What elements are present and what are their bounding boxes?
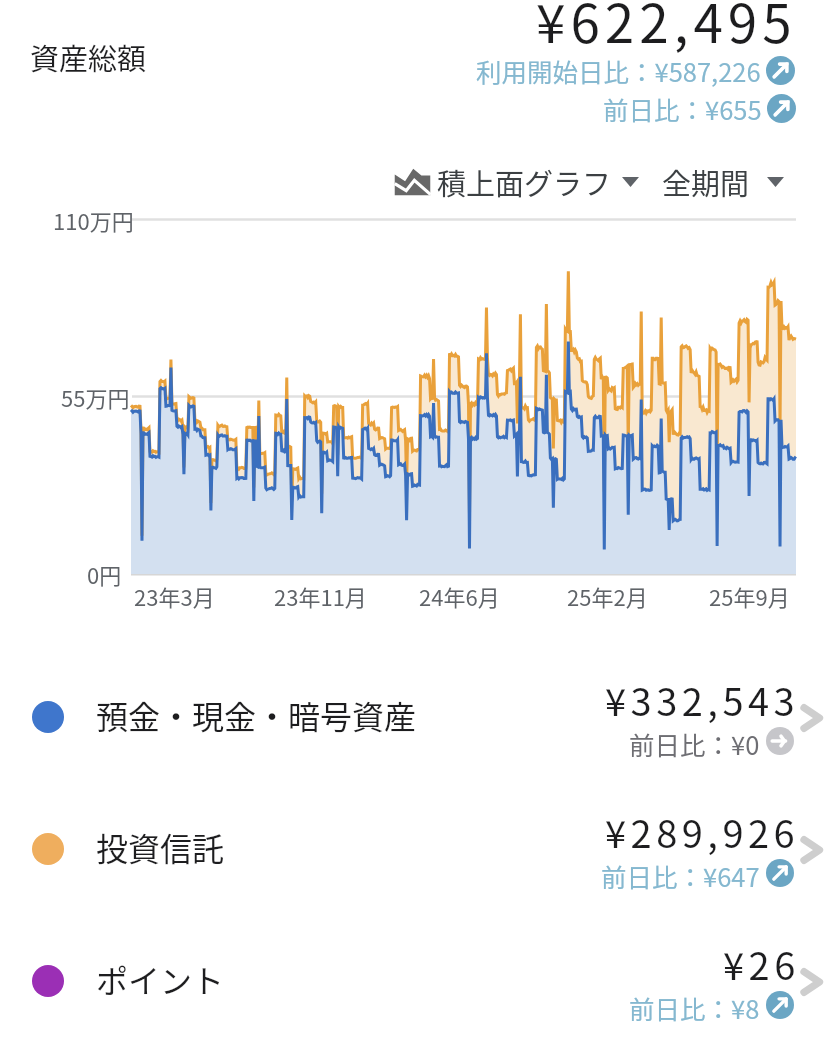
staticText: 55万円 xyxy=(61,381,130,413)
other: Open ポイント xyxy=(799,963,828,1001)
staticText: 預金・現金・暗号資産 xyxy=(96,692,417,738)
staticText: ポイント xyxy=(96,956,225,1002)
staticText: 前日比：¥0 xyxy=(629,725,760,762)
staticText: 23年3月 xyxy=(134,580,215,612)
button[interactable]: ポイント xyxy=(0,916,828,1038)
button[interactable]: 利用開始日比：¥587,226 xyxy=(462,49,809,92)
staticText: 23年11月 xyxy=(274,580,367,612)
staticText: 前日比：¥655 xyxy=(603,90,762,127)
staticText: 投資信託 xyxy=(96,824,225,870)
staticText: 積上面グラフ xyxy=(437,161,612,203)
staticText: 前日比：¥647 xyxy=(601,857,760,894)
button[interactable]: 預金・現金・暗号資産 xyxy=(0,652,828,782)
staticText: 25年9月 xyxy=(709,580,790,612)
staticText: 24年6月 xyxy=(419,580,500,612)
other: Open 投資信託 xyxy=(799,831,828,869)
button[interactable]: 全期間 xyxy=(662,161,784,203)
staticText: 全期間 xyxy=(662,161,750,203)
other: Open 預金・現金・暗号資産 xyxy=(799,699,828,737)
staticText: ¥289,926 xyxy=(605,804,800,859)
staticText: 資産総額 xyxy=(30,36,147,78)
staticText: 25年2月 xyxy=(567,580,648,612)
staticText: 利用開始日比：¥587,226 xyxy=(476,52,761,89)
button[interactable]: 積上面グラフ xyxy=(394,161,639,203)
staticText: 110万円 xyxy=(53,204,134,236)
staticText: ¥332,543 xyxy=(605,672,800,727)
staticText: ¥26 xyxy=(723,936,800,991)
staticText: 前日比：¥8 xyxy=(629,989,760,1026)
button[interactable]: 前日比：¥655 xyxy=(589,87,810,130)
staticText: 0円 xyxy=(87,558,122,590)
staticText: ¥622,495 xyxy=(536,0,797,59)
button[interactable]: 投資信託 xyxy=(0,784,828,914)
